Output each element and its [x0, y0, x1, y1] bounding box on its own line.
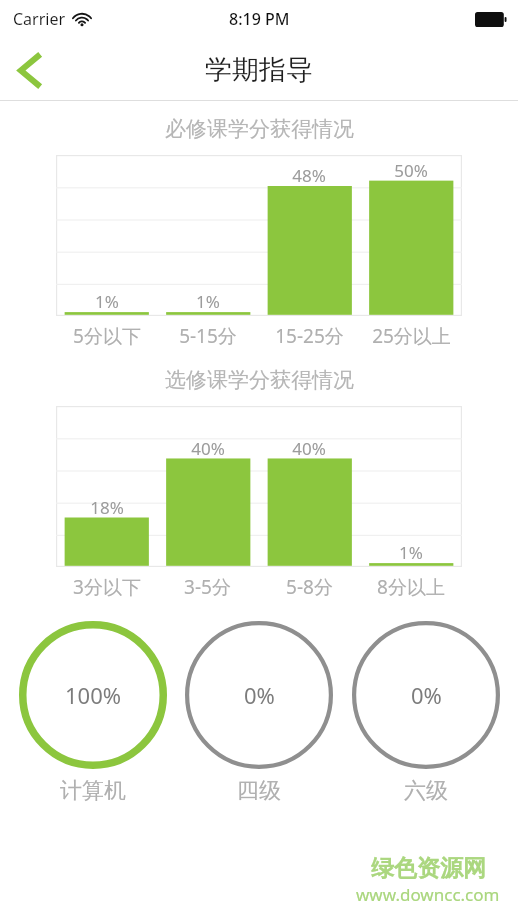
staticText: 5-8分 [286, 574, 333, 600]
staticText: 5分以下 [73, 323, 141, 349]
staticText: 40% [292, 437, 326, 460]
staticText: 0% [411, 680, 442, 710]
staticText: 18% [90, 496, 124, 519]
staticText: 学期指导 [205, 53, 313, 87]
button[interactable]: 100% [19, 621, 167, 805]
staticText: 8:19 PM [229, 8, 290, 30]
staticText: 0% [244, 680, 275, 710]
staticText: 40% [191, 437, 225, 460]
staticText: 选修课学分获得情况 [165, 367, 354, 393]
staticText: 六级 [404, 777, 448, 805]
staticText: 48% [292, 164, 326, 187]
button[interactable]: 0% [352, 621, 500, 805]
staticText: 1% [95, 290, 119, 313]
staticText: Carrier [13, 8, 66, 30]
button[interactable]: Back [2, 42, 58, 98]
staticText: 50% [394, 159, 428, 182]
staticText: www.downcc.com [356, 883, 500, 906]
staticText: 100% [65, 680, 122, 710]
button[interactable]: 0% [185, 621, 333, 805]
staticText: 3分以下 [73, 574, 141, 600]
staticText: 1% [196, 290, 220, 313]
staticText: 3-5分 [184, 574, 231, 600]
staticText: 绿色资源网 [371, 854, 486, 883]
staticText: 四级 [237, 777, 281, 805]
staticText: 15-25分 [275, 323, 344, 349]
staticText: 1% [399, 541, 423, 564]
staticText: 5-15分 [179, 323, 237, 349]
staticText: 8分以上 [377, 574, 445, 600]
staticText: 计算机 [60, 777, 126, 805]
staticText: 25分以上 [372, 323, 451, 349]
staticText: 必修课学分获得情况 [165, 116, 354, 142]
